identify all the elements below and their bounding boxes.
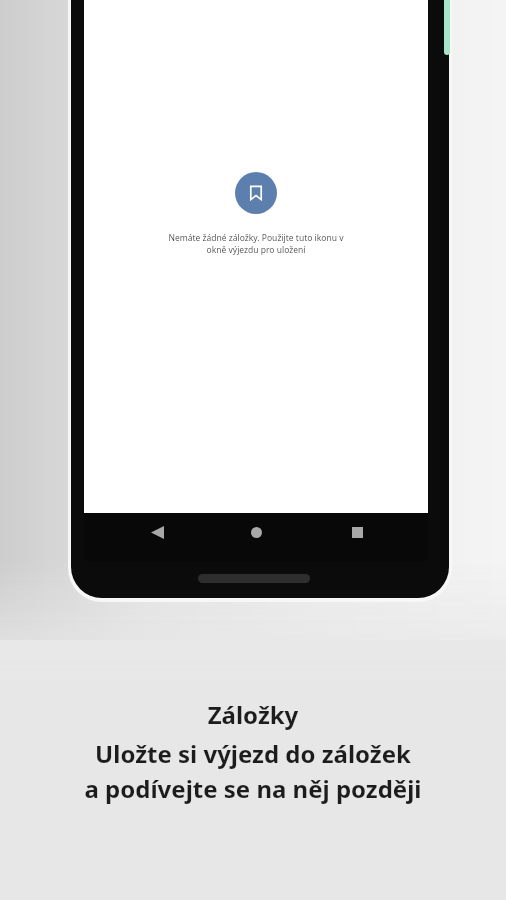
staticText: Uložte si výjezd do záložek — [18, 737, 488, 770]
button[interactable]: Poslední aplikace — [343, 518, 371, 546]
staticText: Záložky — [18, 698, 488, 731]
button[interactable]: Zpět — [143, 518, 171, 546]
button[interactable]: Záložka — [235, 172, 277, 214]
staticText: Nemáte žádné záložky. Použijte tuto ikon… — [104, 232, 408, 256]
staticText: a podívejte se na něj později — [18, 772, 488, 805]
button[interactable]: Domů — [242, 518, 270, 546]
